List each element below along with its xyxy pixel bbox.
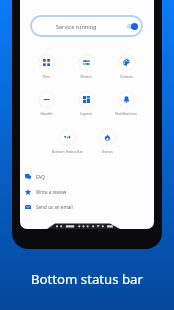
button[interactable]: Write a review <box>20 184 154 199</box>
button[interactable]: Service running <box>30 15 143 37</box>
staticText: Notifications <box>115 111 137 116</box>
staticText: Sliders <box>80 74 92 79</box>
staticText: Bottom Status Bar <box>52 149 83 154</box>
button[interactable]: Notifications <box>107 91 145 116</box>
button[interactable]: Extras <box>88 129 126 154</box>
button[interactable]: Layout <box>67 91 105 116</box>
staticText: Tiles <box>42 74 50 79</box>
staticText: Write a review <box>36 189 67 195</box>
staticText: Layout <box>80 111 92 116</box>
button[interactable]: Send us an email <box>20 199 154 214</box>
staticText: Send us an email <box>36 204 73 210</box>
staticText: FAQ <box>36 174 45 180</box>
staticText: Bottom status bar <box>31 270 143 288</box>
staticText: Service running <box>56 23 97 30</box>
button[interactable]: Sliders <box>67 54 105 79</box>
button[interactable]: Tiles <box>27 54 65 79</box>
button[interactable]: Bottom Status Bar <box>48 129 86 154</box>
staticText: Handle <box>40 111 53 116</box>
button[interactable]: FAQ <box>20 169 154 184</box>
staticText: Extras <box>102 149 113 154</box>
button[interactable]: Colours <box>107 54 145 79</box>
other: Bottom status bar preview <box>20 222 154 229</box>
staticText: Colours <box>120 74 133 79</box>
button[interactable]: Handle <box>27 91 65 116</box>
